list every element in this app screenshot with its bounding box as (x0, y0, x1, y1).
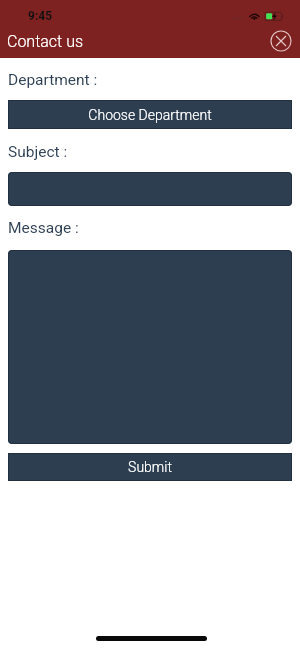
staticText: 9:45 (28, 9, 53, 23)
staticText: Subject : (8, 143, 68, 161)
button[interactable] (8, 172, 292, 206)
button[interactable] (8, 250, 292, 444)
staticText: Submit (128, 459, 172, 475)
button[interactable]: Submit (8, 453, 292, 481)
staticText: Contact us (7, 32, 84, 51)
button[interactable]: Close (268, 28, 294, 54)
button[interactable]: Choose Department (8, 100, 292, 129)
staticText: Message : (8, 219, 79, 237)
staticText: Choose Department (88, 107, 212, 123)
staticText: Department : (8, 71, 98, 89)
